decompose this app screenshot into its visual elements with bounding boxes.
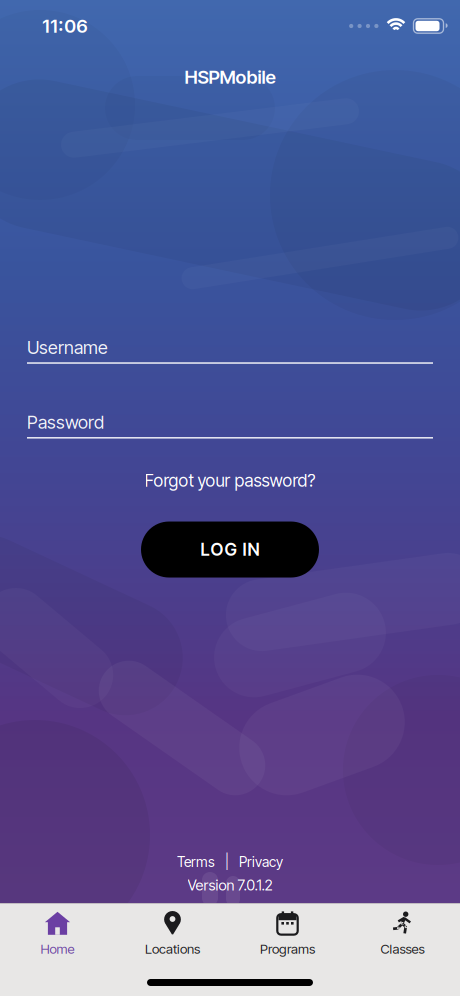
staticText: 11:06 xyxy=(42,15,88,37)
button[interactable]: Classes xyxy=(345,910,460,957)
button[interactable]: Locations xyxy=(115,910,230,957)
button[interactable]: Home xyxy=(0,910,115,957)
button[interactable]: Password xyxy=(27,411,433,439)
button[interactable]: LOG IN xyxy=(141,521,319,577)
staticText: HSPMobile xyxy=(184,66,275,88)
button[interactable]: Username xyxy=(27,336,433,364)
staticText: Locations xyxy=(145,941,200,957)
staticText: Home xyxy=(40,941,74,957)
button[interactable]: Terms xyxy=(177,853,215,870)
staticText: Username xyxy=(27,336,108,358)
staticText: Terms xyxy=(177,853,215,870)
staticText: | xyxy=(225,853,229,870)
staticText: Privacy xyxy=(239,853,283,870)
staticText: Forgot your password? xyxy=(144,470,315,491)
button[interactable]: Privacy xyxy=(239,853,283,870)
staticText: Password xyxy=(27,411,104,433)
button[interactable]: Programs xyxy=(230,910,345,957)
staticText: Programs xyxy=(260,941,315,957)
button[interactable]: Forgot your password? xyxy=(144,470,315,491)
staticText: Classes xyxy=(380,941,424,957)
staticText: LOG IN xyxy=(200,539,259,560)
staticText: Version 7.0.1.2 xyxy=(187,876,272,894)
